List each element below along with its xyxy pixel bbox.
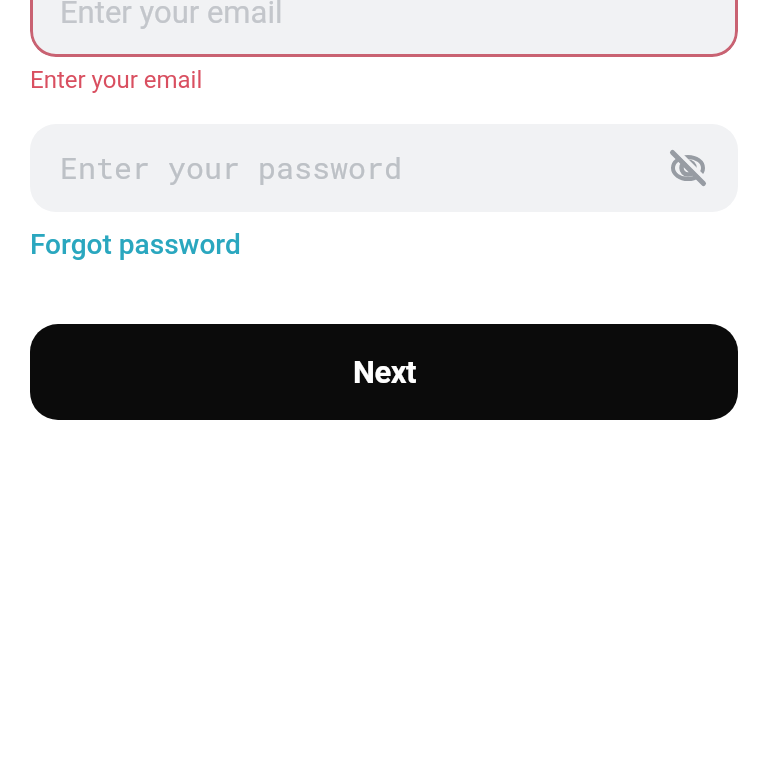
staticText: Enter your email (30, 66, 203, 94)
button[interactable]: Enter your email (30, 0, 738, 57)
button[interactable]: Forgot password (30, 228, 241, 261)
button[interactable]: Enter your password (30, 124, 738, 212)
button[interactable]: Next (30, 324, 738, 420)
staticText: Enter your password (60, 148, 403, 188)
button[interactable] (670, 150, 706, 186)
staticText: Enter your email (60, 0, 283, 30)
staticText: Next (353, 354, 416, 390)
